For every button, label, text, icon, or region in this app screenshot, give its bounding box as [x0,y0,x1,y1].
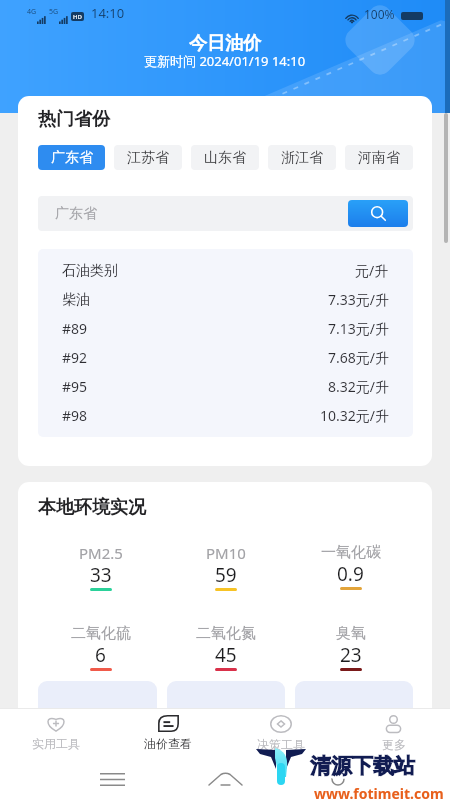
staticText: 广东省 [55,205,97,223]
staticText: 臭氧 [336,624,366,643]
staticText: PM10 [206,543,246,563]
button[interactable]: 更多 [337,709,450,757]
staticText: 清源下载站 [308,751,413,777]
button[interactable]: 搜索 [348,200,408,227]
staticText: 100% [364,6,395,22]
staticText: HD [73,13,82,21]
button[interactable]: 决策工具 [224,709,337,757]
staticText: 清源下载站 [312,755,417,781]
staticText: 23 [340,642,362,668]
staticText: 广东省 [51,149,93,167]
button[interactable]: 实用工具 [0,709,112,757]
staticText: 4G [27,7,37,17]
staticText: 清源下载站 [310,751,415,777]
staticText: 6 [95,642,106,668]
staticText: 二氧化硫 [71,624,131,643]
staticText: 59 [215,562,237,588]
staticText: 本地环境实况 [38,496,146,519]
button[interactable]: 江苏省 [114,145,182,170]
staticText: 清源下载站 [312,753,417,779]
staticText: 更多 [382,737,406,752]
staticText: 柴油 [62,291,90,309]
staticText: 45 [215,642,237,668]
staticText: 清源下载站 [310,755,415,781]
button[interactable]: Home [207,761,243,797]
staticText: 浙江省 [281,149,323,167]
staticText: 14:10 [91,4,125,22]
staticText: 10.32元/升 [320,406,389,425]
staticText: 油价查看 [144,736,192,751]
staticText: 山东省 [204,149,246,167]
staticText: 33 [90,562,112,588]
staticText: #89 [62,319,88,338]
staticText: 0.9 [337,561,364,587]
staticText: 一氧化碳 [321,543,381,562]
staticText: 今日油价 [189,32,261,55]
staticText: 二氧化氮 [196,624,256,643]
button[interactable]: 山东省 [191,145,259,170]
staticText: 清源下载站 [308,755,413,781]
staticText: 决策工具 [257,737,305,752]
button[interactable]: 广东省 [38,145,105,170]
button[interactable]: 河南省 [345,145,413,170]
staticText: 江苏省 [127,149,169,167]
staticText: 5G [49,7,59,17]
staticText: 清源下载站 [310,753,415,779]
staticText: #92 [62,348,88,367]
staticText: 元/升 [355,261,389,280]
staticText: #98 [62,406,88,425]
staticText: 7.33元/升 [328,290,389,309]
staticText: 清源下载站 [308,753,413,779]
button[interactable]: 浙江省 [268,145,336,170]
button[interactable]: Recents [94,761,130,797]
button[interactable]: Back [320,761,356,797]
staticText: www.fotimeit.com [314,784,444,800]
staticText: #95 [62,377,88,396]
staticText: 7.68元/升 [328,348,389,367]
staticText: 河南省 [358,149,400,167]
staticText: 热门省份 [38,108,110,131]
staticText: 7.13元/升 [328,319,389,338]
staticText: 8.32元/升 [328,377,389,396]
button[interactable]: 油价查看 [112,709,224,757]
staticText: 石油类别 [62,262,118,280]
staticText: 清源下载站 [312,751,417,777]
staticText: 更新时间 2024/01/19 14:10 [144,52,306,70]
staticText: PM2.5 [79,543,123,563]
staticText: 实用工具 [32,736,80,751]
